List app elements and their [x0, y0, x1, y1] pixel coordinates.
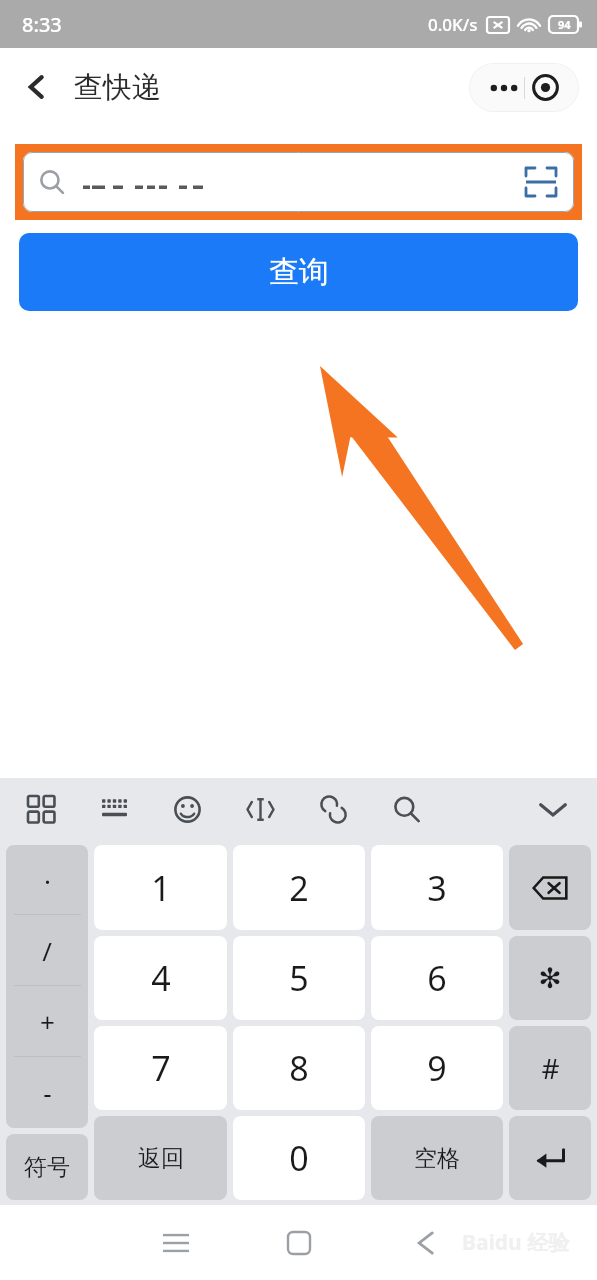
button[interactable]: - [6, 1057, 88, 1128]
staticText: 5 [289, 955, 309, 1001]
button[interactable]: 8 [233, 1026, 365, 1110]
staticText: 空格 [414, 1144, 460, 1173]
button[interactable]: 9 [371, 1026, 503, 1110]
staticText: 返回 [138, 1144, 184, 1173]
button[interactable]: ✻ [509, 936, 591, 1020]
button[interactable]: 4 [94, 936, 227, 1020]
button[interactable]: / [6, 915, 88, 986]
staticText: 8 [289, 1045, 309, 1091]
button[interactable]: 符号 [6, 1134, 88, 1200]
staticText: Baidu 经验 [462, 1228, 570, 1257]
staticText: / [42, 933, 52, 968]
button[interactable]: 返回 [94, 1116, 227, 1200]
staticText: 2 [289, 865, 309, 911]
button[interactable]: Backspace [509, 845, 591, 930]
button[interactable] [23, 152, 574, 212]
staticText: # [541, 1049, 560, 1087]
staticText: 1 [151, 865, 171, 911]
button[interactable]: Recent apps [152, 1219, 200, 1267]
button[interactable]: Back [14, 64, 60, 110]
button[interactable]: 6 [371, 936, 503, 1020]
button[interactable]: Apps [22, 790, 60, 828]
button[interactable]: 查询 [19, 233, 578, 311]
button[interactable]: · [6, 845, 88, 915]
staticText: · [44, 863, 51, 898]
button[interactable]: Move cursor [241, 790, 279, 828]
staticText: - [43, 1075, 52, 1110]
staticText: 7 [151, 1045, 171, 1091]
button[interactable]: More options [469, 63, 579, 112]
staticText: 3 [427, 865, 447, 911]
button[interactable]: Search [387, 790, 425, 828]
staticText: 查询 [269, 253, 329, 291]
button[interactable]: Emoji [168, 790, 206, 828]
button[interactable]: 7 [94, 1026, 227, 1110]
button[interactable]: 3 [371, 845, 503, 930]
button[interactable]: Clipboard [314, 790, 352, 828]
staticText: 8:33 [22, 11, 62, 38]
button[interactable]: Enter [509, 1116, 591, 1200]
staticText: 94 [558, 17, 571, 32]
staticText: 符号 [24, 1153, 70, 1182]
button[interactable]: Hide keyboard [531, 787, 575, 831]
staticText: ✻ [538, 962, 562, 995]
staticText: 0.0K/s [428, 13, 478, 36]
staticText: 0 [289, 1135, 309, 1181]
button[interactable]: + [6, 986, 88, 1057]
button[interactable]: Keyboard layout [95, 790, 133, 828]
button[interactable]: 0 [233, 1116, 365, 1200]
button[interactable]: 1 [94, 845, 227, 930]
staticText: 查快递 [74, 69, 161, 106]
staticText: 4 [151, 955, 171, 1001]
staticText: + [40, 1004, 55, 1039]
button[interactable]: 2 [233, 845, 365, 930]
button[interactable]: 5 [233, 936, 365, 1020]
button[interactable]: # [509, 1026, 591, 1110]
staticText: 9 [427, 1045, 447, 1091]
button[interactable]: Home [275, 1219, 323, 1267]
button[interactable]: Back [402, 1219, 450, 1267]
staticText: 6 [427, 955, 447, 1001]
button[interactable]: 空格 [371, 1116, 503, 1200]
